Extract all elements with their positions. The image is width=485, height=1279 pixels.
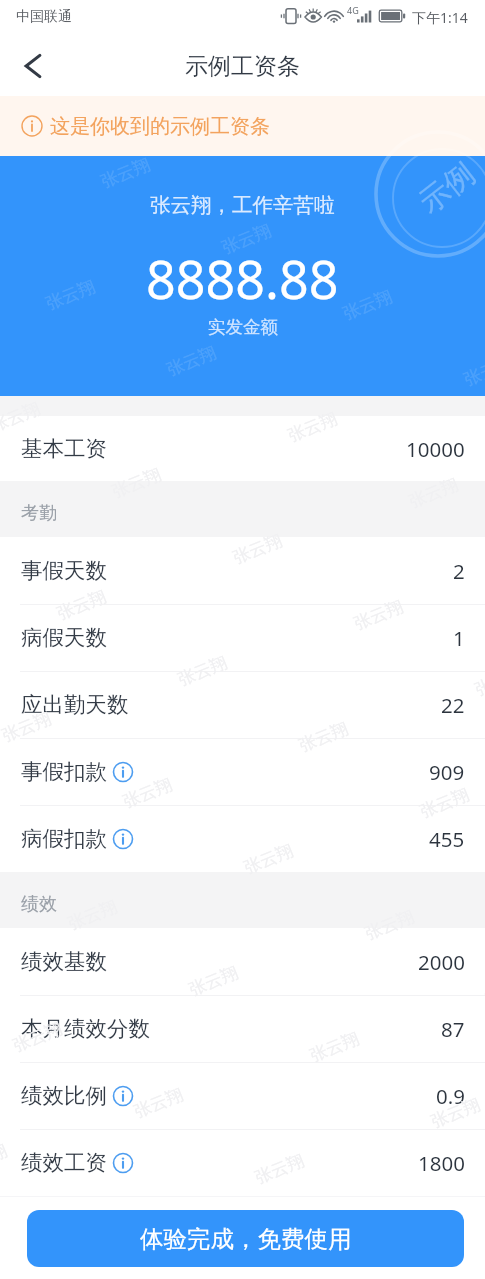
button[interactable]: Back xyxy=(10,43,56,89)
staticText: 本月绩效分数 xyxy=(21,1015,150,1042)
button[interactable]: 基本工资 xyxy=(0,416,485,481)
button[interactable]: 病假扣款 xyxy=(0,805,485,872)
staticText: 中国联通 xyxy=(16,8,72,26)
staticText: 应出勤天数 xyxy=(21,691,129,718)
staticText: 绩效工资 xyxy=(21,1149,107,1176)
button[interactable]: 病假天数 xyxy=(0,604,485,671)
staticText: 事假天数 xyxy=(21,557,107,584)
button[interactable]: 绩效基数 xyxy=(0,928,485,995)
button[interactable]: 体验完成，免费使用 xyxy=(27,1210,464,1267)
staticText: 2 xyxy=(453,557,465,585)
button[interactable]: 绩效比例 xyxy=(0,1062,485,1129)
staticText: 87 xyxy=(441,1015,465,1043)
staticText: 绩效 xyxy=(21,893,57,916)
staticText: 22 xyxy=(441,691,465,719)
staticText: 示例工资条 xyxy=(185,52,300,81)
staticText: 1800 xyxy=(418,1149,465,1177)
staticText: 基本工资 xyxy=(21,435,107,462)
staticText: 体验完成，免费使用 xyxy=(140,1224,352,1254)
button[interactable]: 本月绩效分数 xyxy=(0,995,485,1062)
button[interactable]: 事假天数 xyxy=(0,537,485,604)
staticText: 绩效基数 xyxy=(21,948,107,975)
staticText: 张云翔，工作辛苦啦 xyxy=(150,192,335,218)
staticText: 1 xyxy=(453,624,465,652)
staticText: 8888.88 xyxy=(146,243,339,314)
button[interactable]: 应出勤天数 xyxy=(0,671,485,738)
staticText: 示例 xyxy=(412,155,482,221)
staticText: 909 xyxy=(429,758,465,786)
staticText: 下午1:14 xyxy=(412,8,468,27)
staticText: 考勤 xyxy=(21,502,57,525)
button[interactable]: 事假扣款 xyxy=(0,738,485,805)
staticText: 10000 xyxy=(406,435,465,463)
staticText: 2000 xyxy=(418,948,465,976)
staticText: 0.9 xyxy=(436,1082,465,1110)
staticText: 病假扣款 xyxy=(21,825,107,852)
staticText: 病假天数 xyxy=(21,624,107,651)
staticText: 事假扣款 xyxy=(21,758,107,785)
staticText: 绩效比例 xyxy=(21,1082,107,1109)
staticText: 4G xyxy=(347,4,359,16)
staticText: 455 xyxy=(429,825,465,853)
button[interactable]: 绩效工资 xyxy=(0,1129,485,1196)
staticText: 这是你收到的示例工资条 xyxy=(50,114,270,139)
staticText: 实发金额 xyxy=(208,316,278,338)
